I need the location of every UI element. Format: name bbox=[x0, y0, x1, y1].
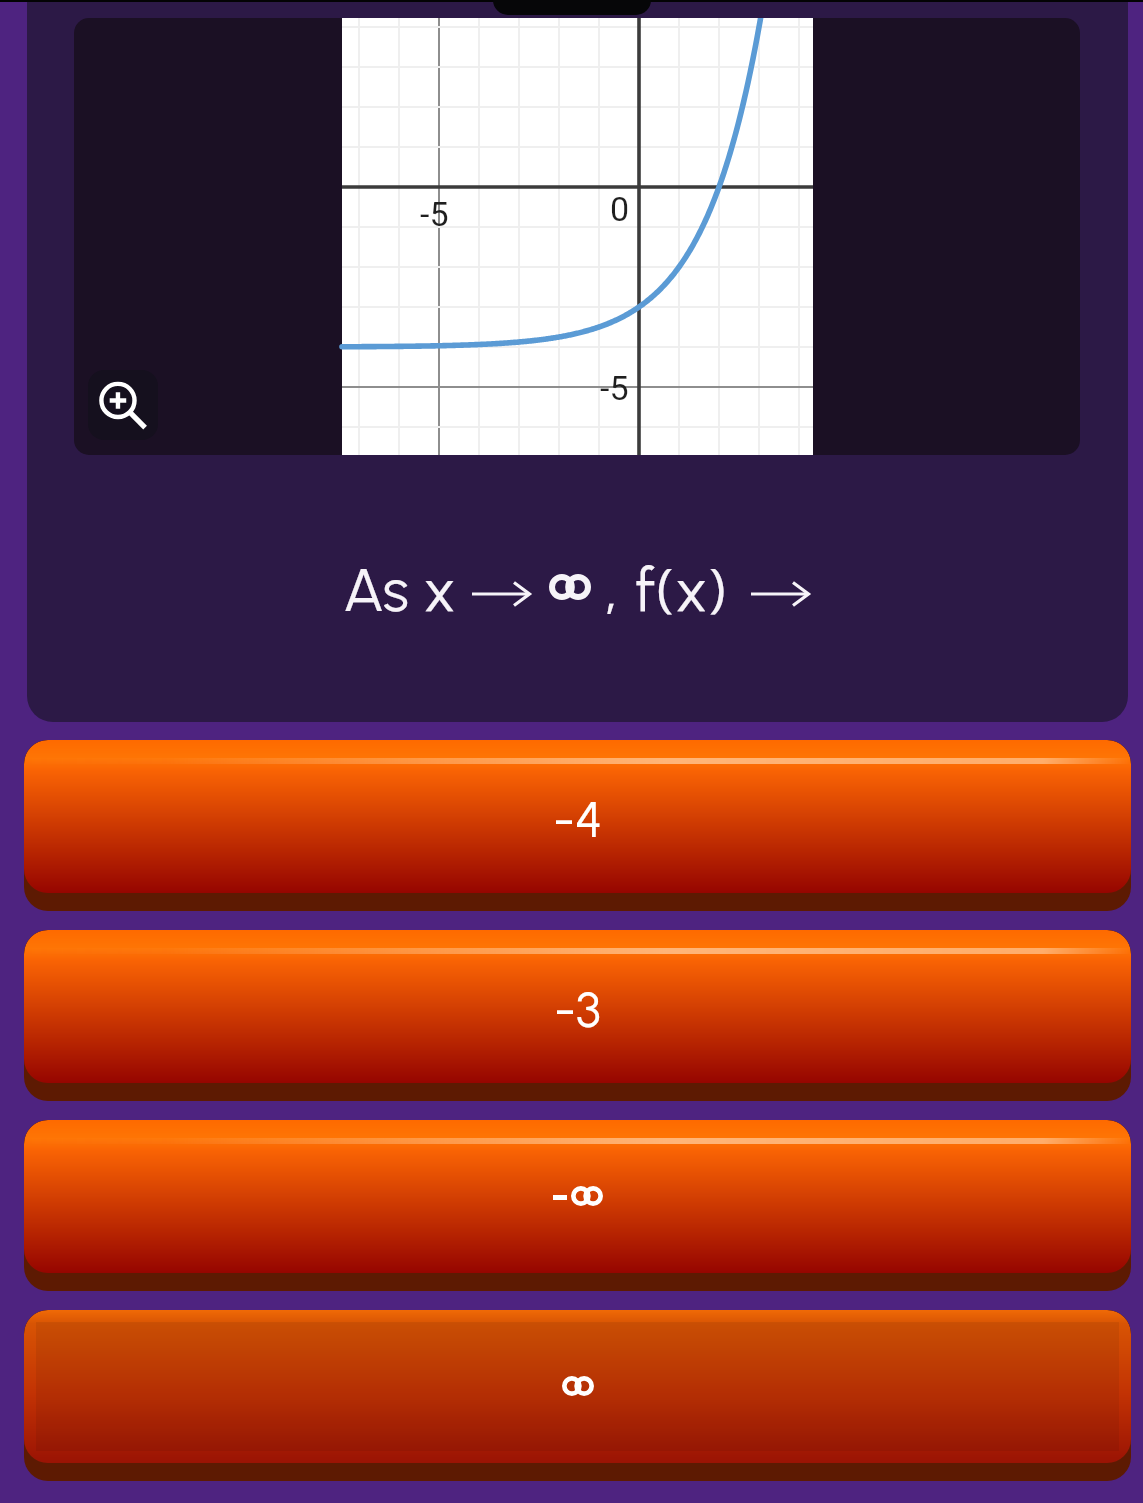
button[interactable]: Zoom in on image bbox=[88, 370, 158, 440]
button[interactable]: -3 bbox=[24, 930, 1131, 1101]
staticText: -4 bbox=[553, 789, 603, 849]
staticText: -3 bbox=[554, 979, 601, 1039]
button[interactable] bbox=[24, 1310, 1131, 1481]
staticText: , bbox=[605, 553, 618, 626]
staticText: 0 bbox=[610, 189, 630, 229]
button[interactable]: -4 bbox=[24, 740, 1131, 911]
staticText: As x bbox=[343, 553, 456, 626]
staticText: -5 bbox=[600, 368, 629, 408]
button[interactable] bbox=[24, 1120, 1131, 1291]
staticText: -5 bbox=[420, 194, 449, 234]
staticText: f(x) bbox=[635, 553, 728, 626]
